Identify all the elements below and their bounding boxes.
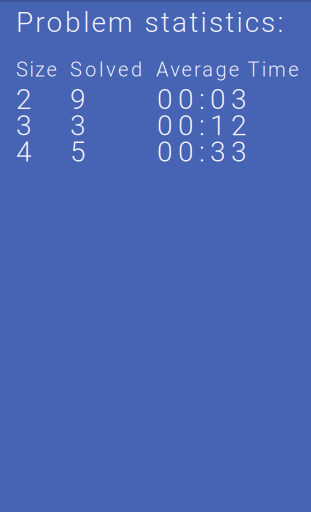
staticText: : bbox=[199, 135, 205, 168]
staticText: 3 bbox=[70, 109, 86, 142]
staticText: 5 bbox=[70, 135, 86, 168]
staticText: 3 bbox=[210, 135, 226, 168]
staticText: : bbox=[199, 109, 205, 142]
staticText: 0 bbox=[178, 109, 194, 142]
staticText: 3 bbox=[231, 83, 247, 116]
staticText: 2 bbox=[16, 83, 32, 116]
staticText: 0 bbox=[157, 109, 173, 142]
staticText: 0 bbox=[210, 83, 226, 116]
staticText: 0 bbox=[157, 83, 173, 116]
staticText: 1 bbox=[210, 109, 226, 142]
staticText: Solved bbox=[70, 58, 142, 81]
staticText: 2 bbox=[231, 109, 247, 142]
staticText: 3 bbox=[16, 109, 32, 142]
staticText: 0 bbox=[178, 83, 194, 116]
staticText: Average Time bbox=[156, 58, 298, 81]
staticText: 0 bbox=[157, 135, 173, 168]
staticText: 3 bbox=[231, 135, 247, 168]
staticText: 4 bbox=[16, 135, 32, 168]
staticText: 0 bbox=[178, 135, 194, 168]
staticText: Size bbox=[16, 58, 56, 81]
staticText: : bbox=[199, 83, 205, 116]
staticText: 9 bbox=[70, 83, 86, 116]
staticText: Problem statistics: bbox=[16, 6, 283, 39]
